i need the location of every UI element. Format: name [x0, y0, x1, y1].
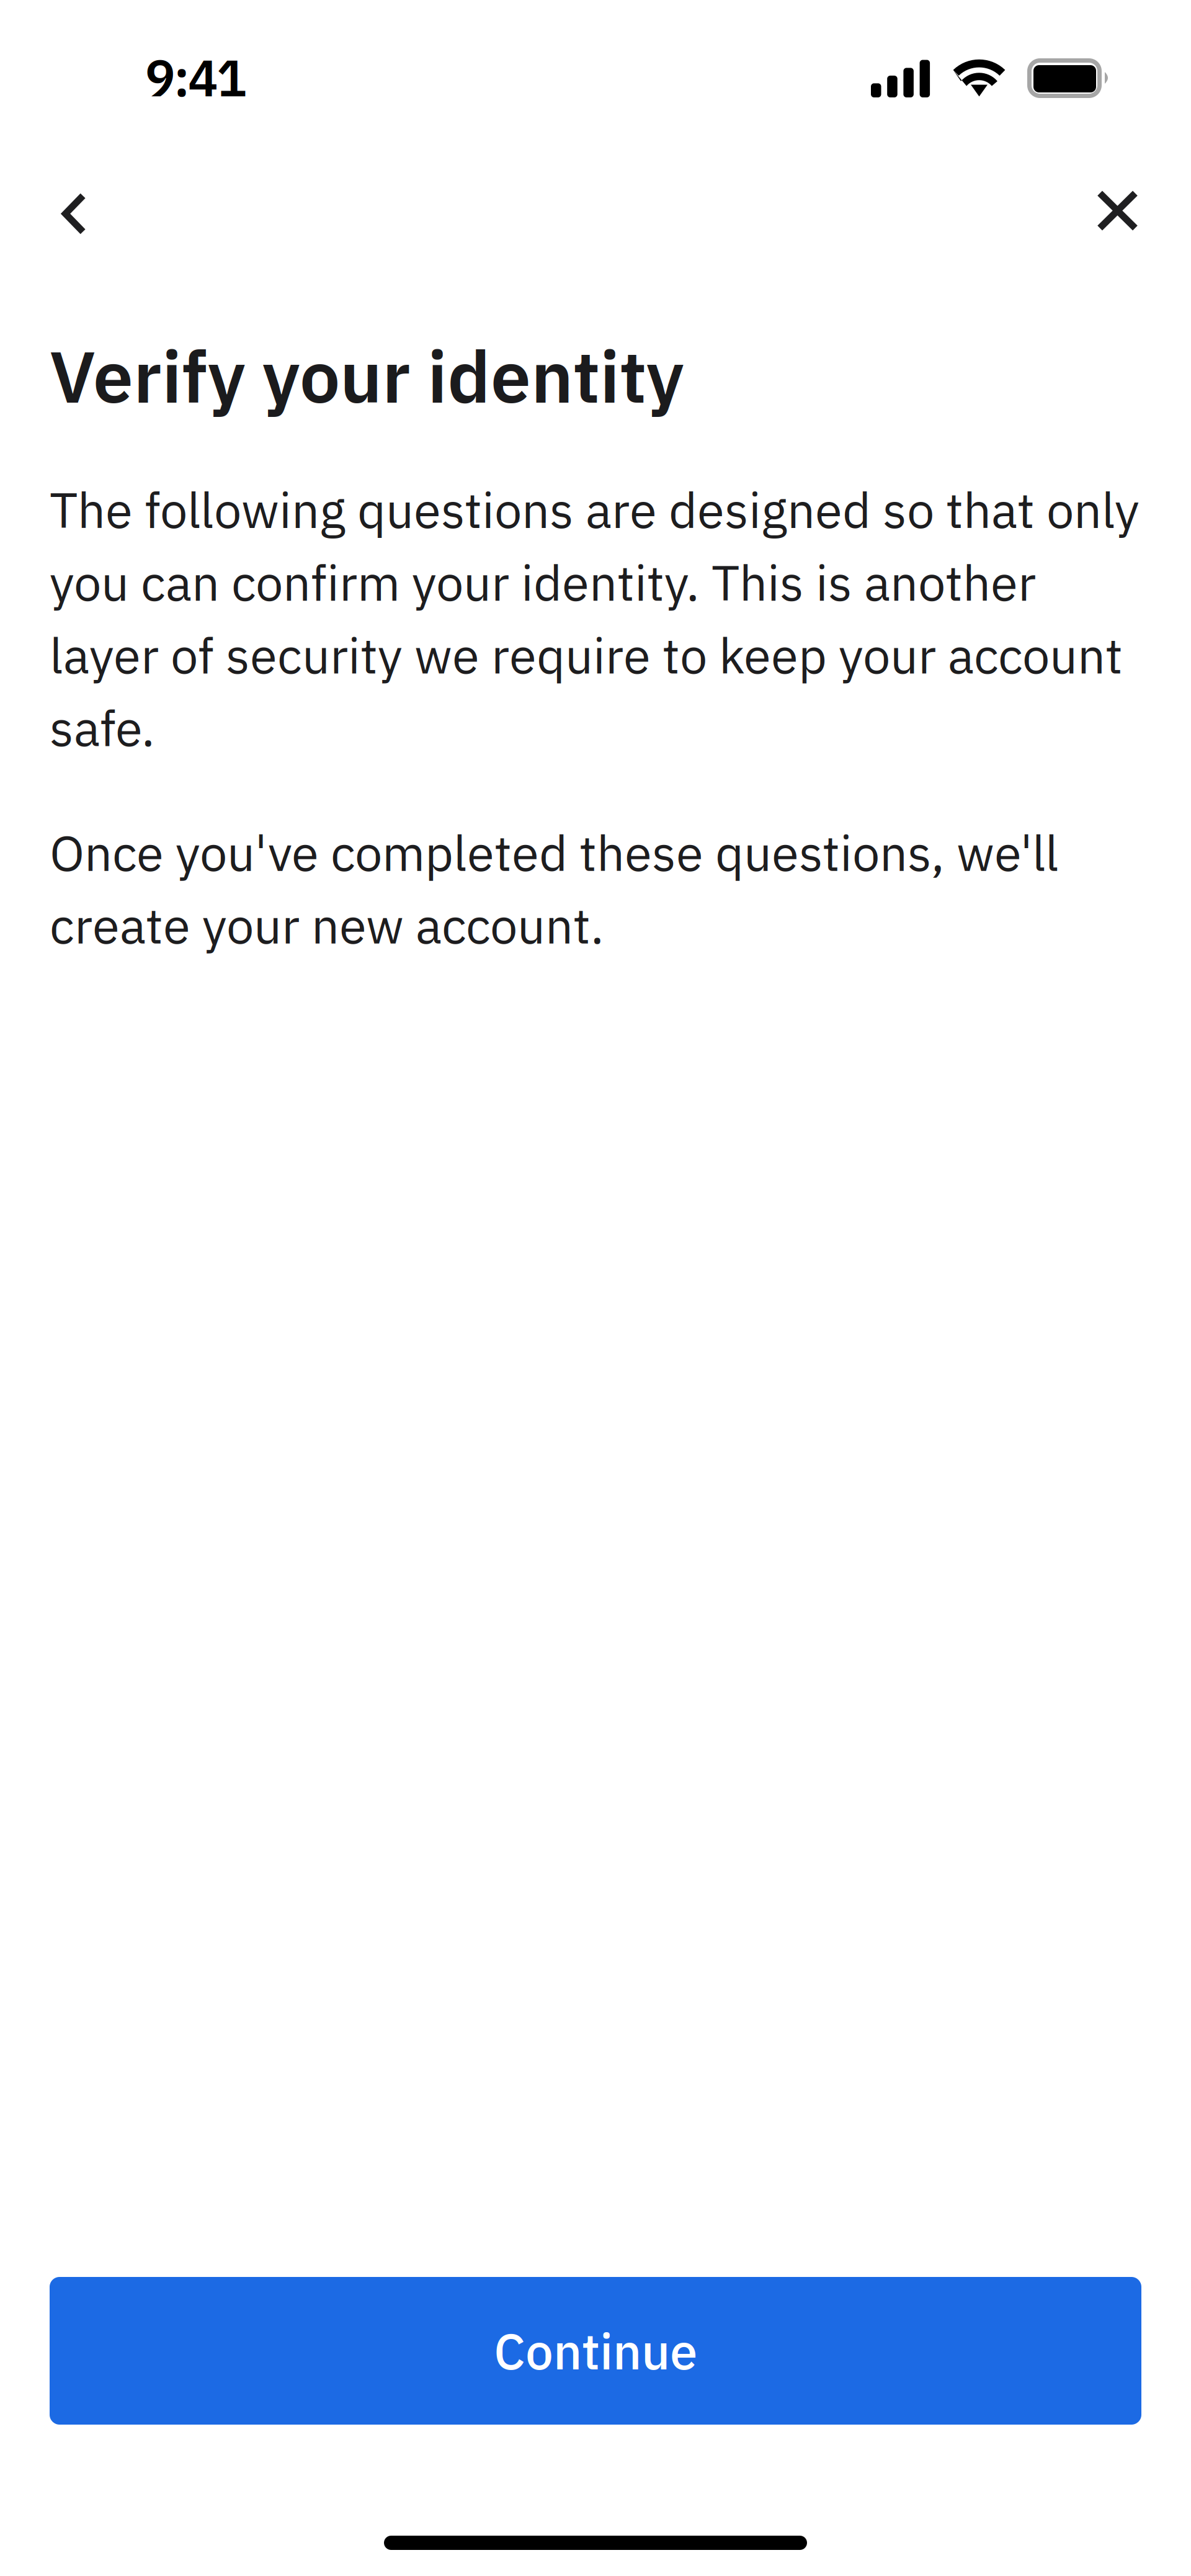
button[interactable]: Close [1077, 170, 1158, 251]
button[interactable]: Back [32, 173, 113, 254]
button[interactable]: Continue [50, 2277, 1141, 2425]
staticText: Verify your identity [50, 329, 684, 422]
staticText: Continue [494, 2319, 697, 2383]
staticText: 9:41 [145, 45, 247, 110]
staticText: Once you've completed these questions, w… [50, 820, 1059, 957]
staticText: The following questions are designed so … [50, 478, 1140, 760]
